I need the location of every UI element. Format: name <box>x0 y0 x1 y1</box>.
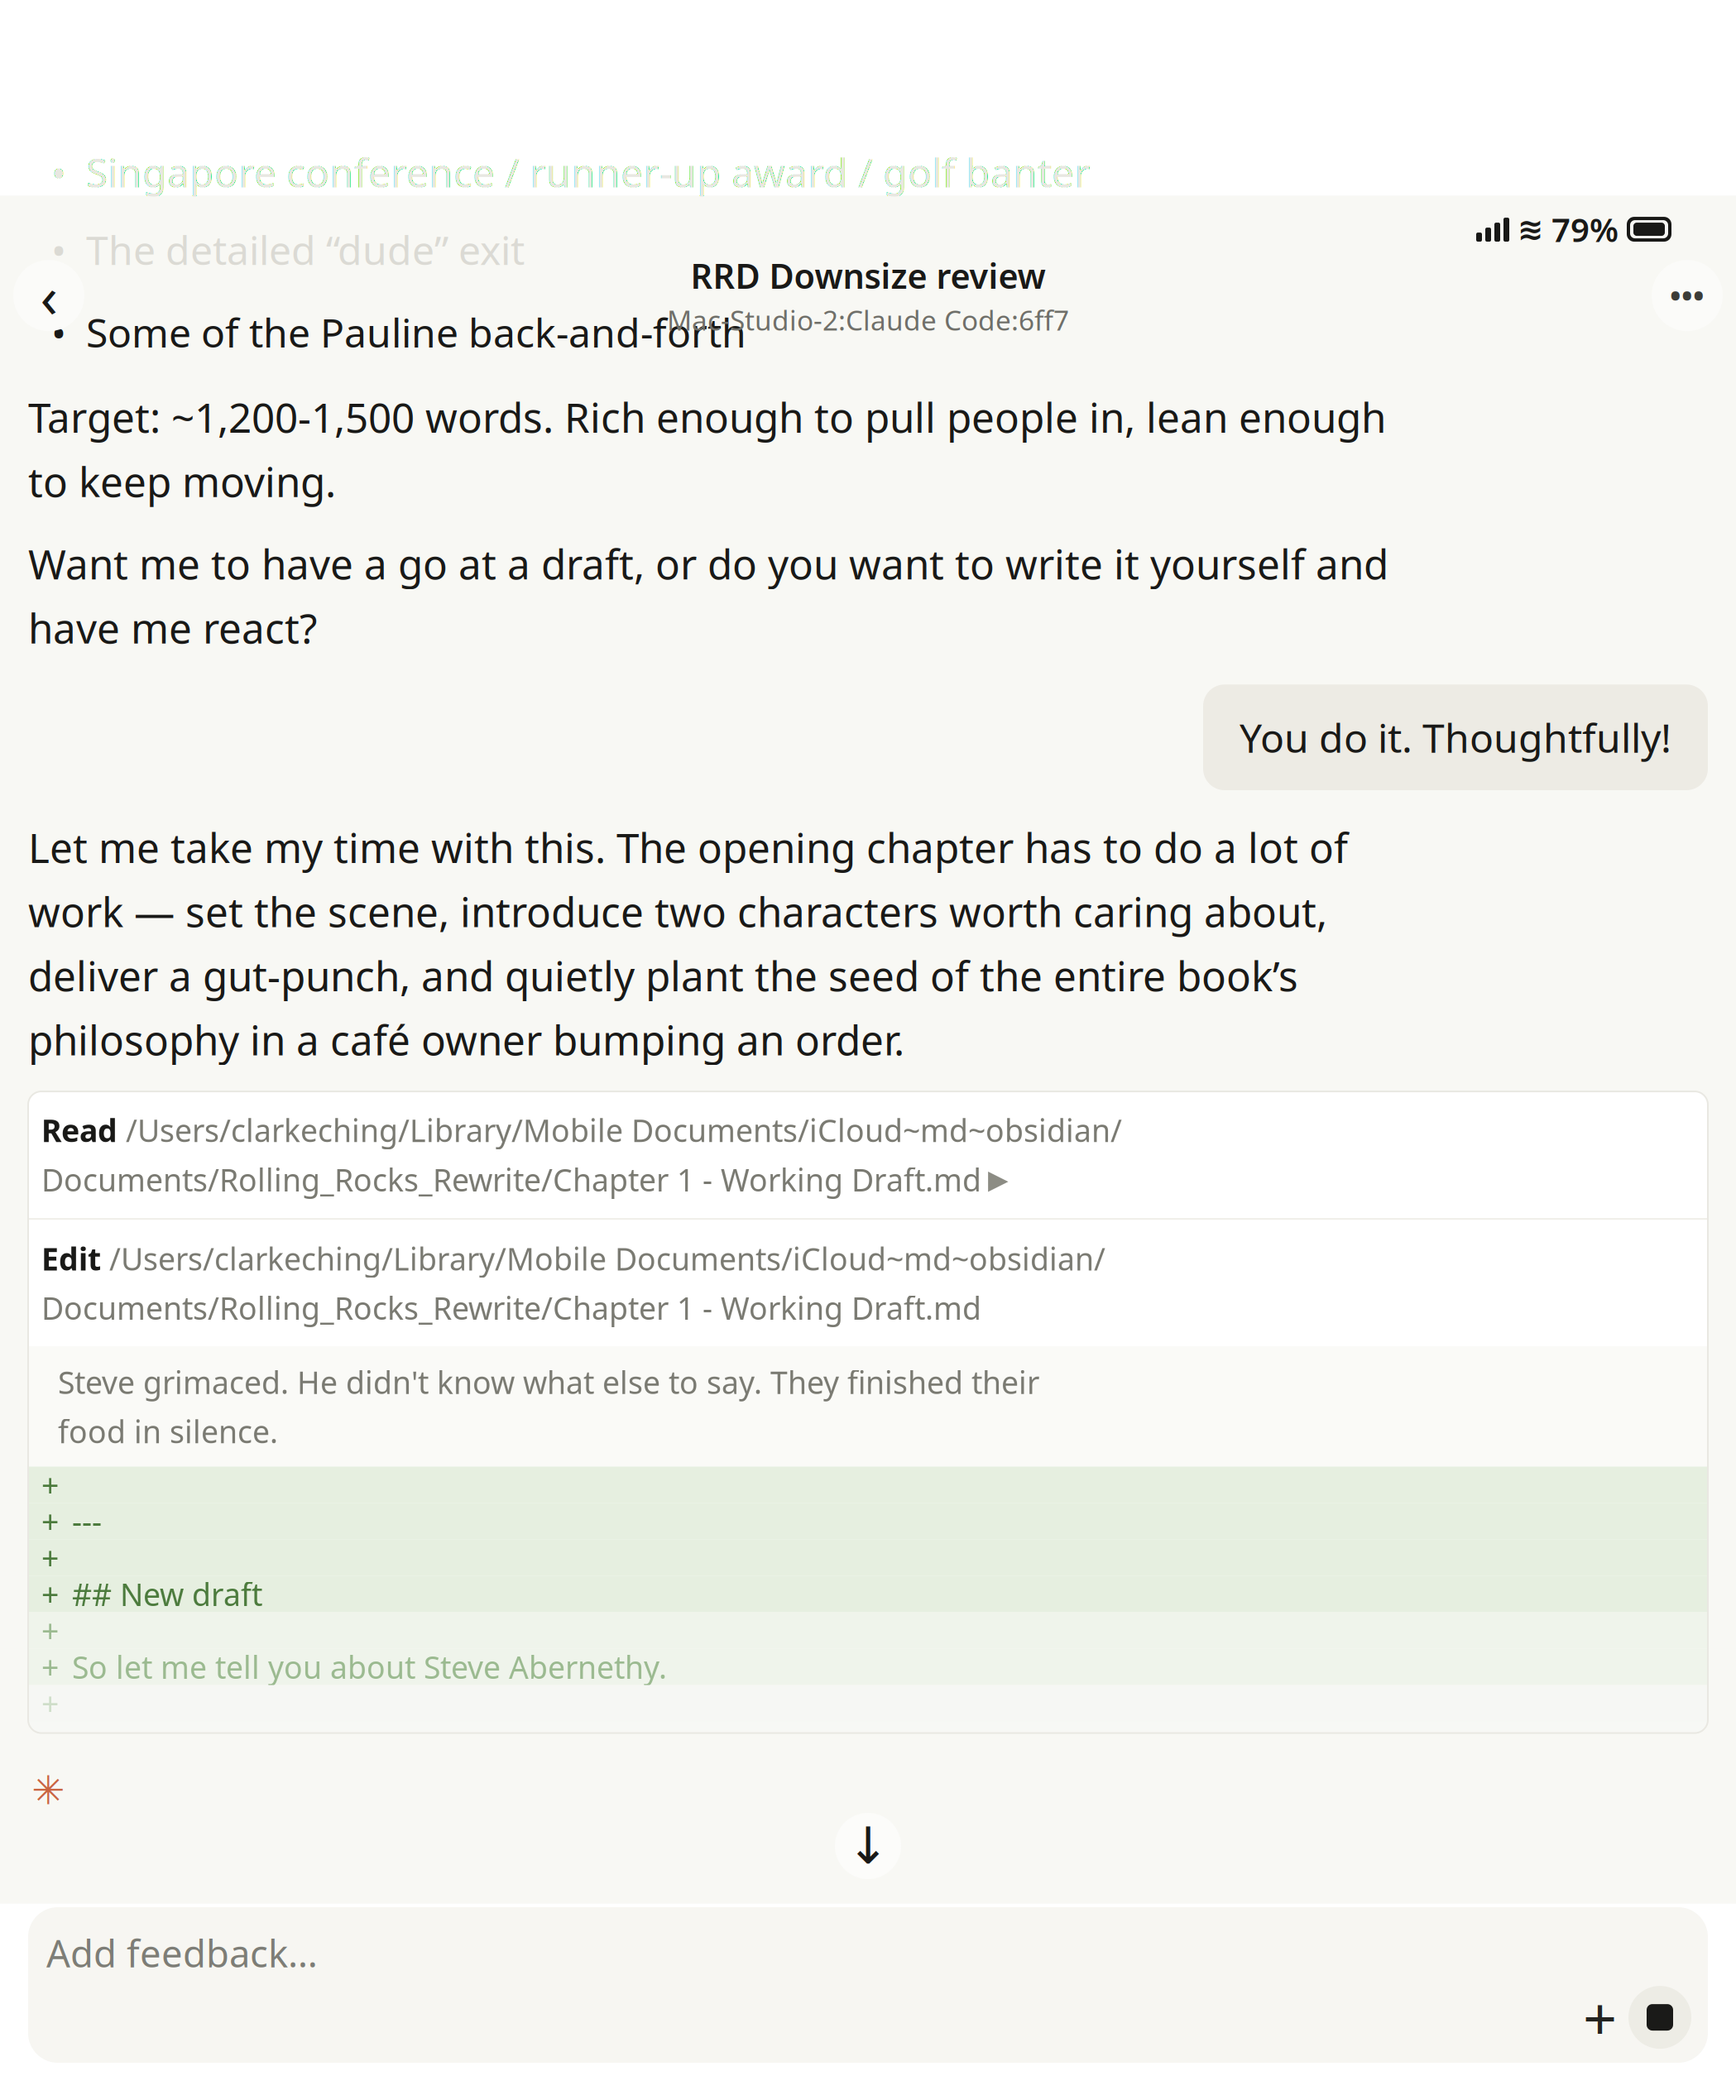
staticText: /Users/clarkeching/Library/Mobile Docume… <box>109 1238 1105 1279</box>
staticText: /Users/clarkeching/Library/Mobile Docume… <box>126 1110 1122 1151</box>
button[interactable]: Scroll to bottom <box>835 1813 901 1879</box>
staticText: • Singapore conference / runner-up award… <box>51 146 1091 198</box>
staticText: + <box>1583 1978 1617 2057</box>
staticText: 79% <box>1551 207 1619 251</box>
staticText: philosophy in a café owner bumping an or… <box>28 1012 904 1067</box>
staticText: ‹ <box>40 257 58 334</box>
staticText: + <box>41 1537 59 1578</box>
staticText: to keep moving. <box>28 454 336 508</box>
staticText: + <box>41 1501 59 1542</box>
staticText: + <box>41 1610 59 1651</box>
button[interactable]: Add feedback… <box>28 1907 1708 2063</box>
staticText: + <box>41 1574 59 1615</box>
staticText: Steve grimaced. He didn't know what else… <box>41 1361 1039 1402</box>
button[interactable]: Back <box>13 260 84 331</box>
staticText: food in silence. <box>41 1411 278 1452</box>
staticText: Target: ~1,200-1,500 words. Rich enough … <box>28 390 1386 444</box>
staticText: --- <box>72 1501 102 1542</box>
staticText: Edit <box>41 1238 109 1279</box>
staticText: • The detailed “dude” exit <box>51 223 525 276</box>
staticText: So let me tell you about Steve Abernethy… <box>72 1646 667 1687</box>
staticText: ≋ <box>1518 212 1543 247</box>
staticText: + <box>41 1646 59 1687</box>
staticText: have me react? <box>28 601 317 655</box>
staticText: + <box>41 1464 59 1505</box>
staticText: Want me to have a go at a draft, or do y… <box>28 536 1388 591</box>
staticText: You do it. Thoughtfully! <box>1240 711 1671 764</box>
staticText: ↓ <box>847 1817 889 1875</box>
staticText: Mac-Studio-2:Claude Code:6ff7 <box>667 302 1069 338</box>
staticText: deliver a gut-punch, and quietly plant t… <box>28 948 1298 1002</box>
staticText: • Some of the Pauline back-and-forth <box>51 306 746 358</box>
staticText: ✳ <box>31 1768 65 1813</box>
staticText: ••• <box>1670 276 1705 315</box>
staticText: ▶ <box>988 1164 1009 1194</box>
staticText: RRD Downsize review <box>691 253 1045 298</box>
staticText: + <box>41 1683 59 1724</box>
staticText: Let me take my time with this. The openi… <box>28 820 1348 874</box>
staticText: Read <box>41 1110 126 1151</box>
staticText: Add feedback… <box>46 1928 318 1978</box>
staticText: work — set the scene, introduce two char… <box>28 884 1327 938</box>
staticText: Documents/Rolling_Rocks_Rewrite/Chapter … <box>41 1287 981 1328</box>
staticText: Documents/Rolling_Rocks_Rewrite/Chapter … <box>41 1159 981 1200</box>
staticText: ## New draft <box>72 1574 262 1615</box>
button[interactable]: More options <box>1652 260 1723 331</box>
